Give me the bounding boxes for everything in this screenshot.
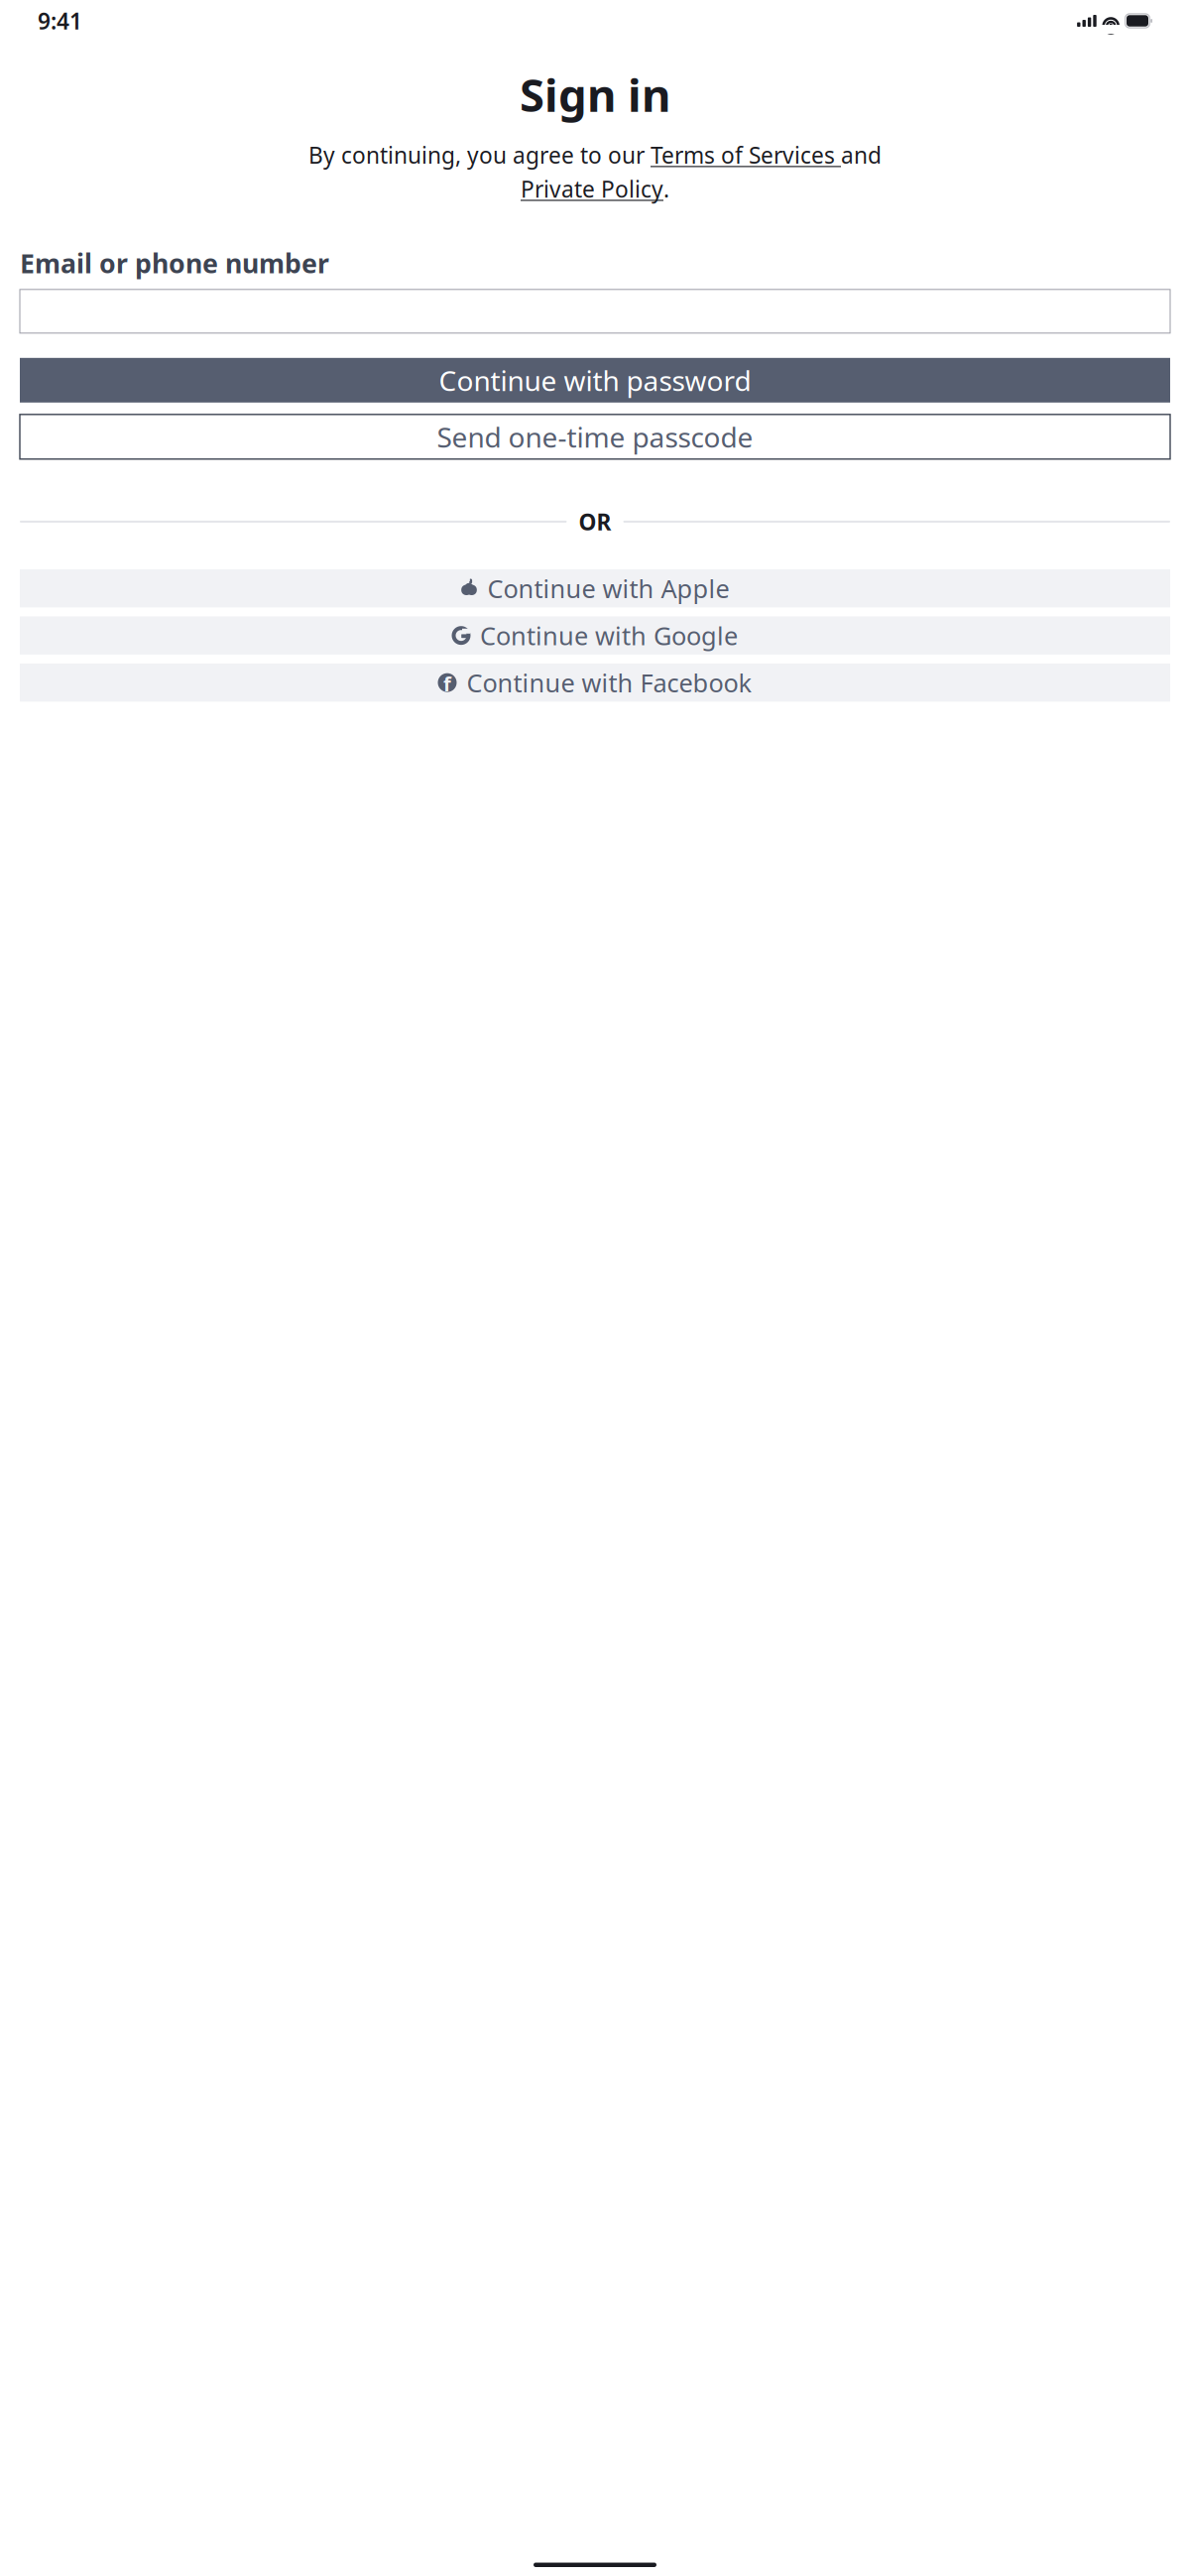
- staticText: Continue with password: [439, 362, 751, 399]
- button[interactable]: [20, 289, 1170, 333]
- button[interactable]: f: [20, 663, 1170, 702]
- staticText: By continuing, you agree to our: [308, 140, 651, 170]
- staticText: .: [663, 174, 669, 204]
- staticText: Continue with Apple: [487, 572, 729, 605]
- staticText: Continue with Google: [480, 619, 738, 652]
- staticText: OR: [579, 507, 611, 537]
- button[interactable]: Send one-time passcode: [20, 414, 1170, 459]
- staticText: and: [841, 140, 882, 170]
- staticText: Send one-time passcode: [437, 418, 753, 455]
- staticText: 9:41: [38, 6, 82, 36]
- button[interactable]: Private Policy: [521, 174, 663, 204]
- button[interactable]: Continue with password: [20, 358, 1170, 403]
- button[interactable]: Continue with Apple: [20, 569, 1170, 607]
- staticText: Terms of Services: [651, 140, 841, 170]
- staticText: Email or phone number: [20, 245, 329, 281]
- staticText: Sign in: [520, 64, 670, 124]
- staticText: f: [443, 670, 451, 697]
- staticText: Continue with Facebook: [467, 666, 752, 699]
- staticText: Private Policy: [521, 174, 663, 204]
- button[interactable]: Terms of Services: [651, 140, 841, 170]
- button[interactable]: Continue with Google: [20, 616, 1170, 655]
